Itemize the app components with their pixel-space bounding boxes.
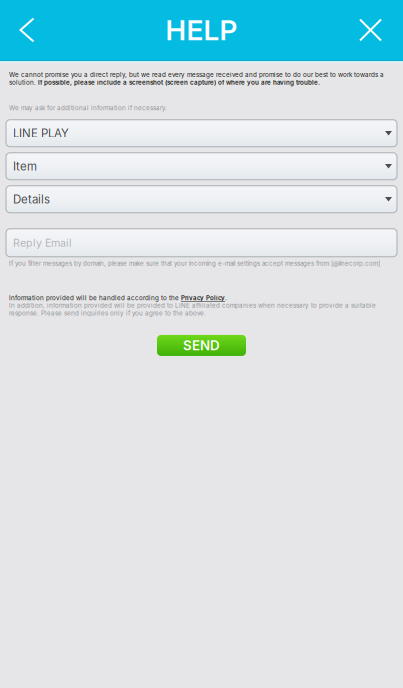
button[interactable]: Reply Email bbox=[6, 229, 397, 257]
staticText: Information provided will be handled acc… bbox=[9, 294, 227, 302]
staticText: In addition, information provided will b… bbox=[9, 302, 376, 317]
staticText: Details bbox=[13, 192, 50, 206]
button[interactable]: SEND bbox=[157, 335, 246, 356]
button[interactable]: Item bbox=[6, 153, 397, 180]
staticText: If you filter messages by domain, please… bbox=[9, 260, 380, 267]
staticText: HELP bbox=[165, 13, 237, 47]
button[interactable]: Back bbox=[0, 0, 49, 60]
button[interactable]: Details bbox=[6, 186, 397, 213]
button[interactable]: Close bbox=[345, 0, 403, 60]
staticText: We cannot promise you a direct reply, bu… bbox=[9, 71, 384, 86]
staticText: Reply Email bbox=[13, 236, 72, 249]
staticText: SEND bbox=[183, 337, 220, 353]
staticText: Item bbox=[13, 159, 37, 173]
button[interactable]: LINE PLAY bbox=[6, 120, 397, 147]
staticText: LINE PLAY bbox=[13, 126, 69, 140]
staticText: We may ask for additional information if… bbox=[9, 104, 167, 112]
